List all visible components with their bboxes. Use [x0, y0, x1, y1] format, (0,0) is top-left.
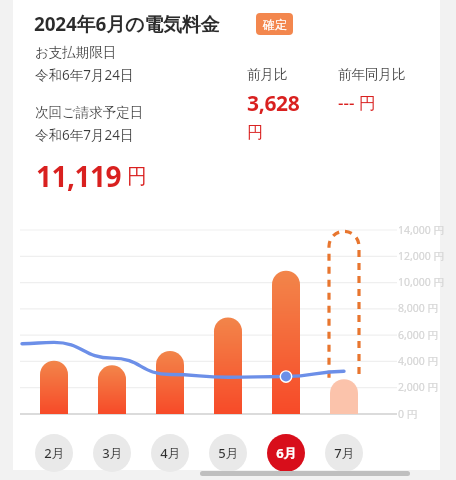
- staticText: 3月: [102, 444, 123, 462]
- staticText: お支払期限日: [35, 44, 117, 61]
- button[interactable]: 4月: [151, 434, 189, 472]
- staticText: 令和6年7月24日: [35, 126, 134, 144]
- staticText: 2024年6月の電気料金: [34, 11, 220, 37]
- button[interactable]: 7月: [325, 434, 363, 472]
- staticText: 前月比: [247, 66, 288, 83]
- staticText: 0 円: [398, 407, 418, 421]
- button[interactable]: 2月: [35, 434, 73, 472]
- staticText: 14,000 円: [398, 223, 445, 237]
- staticText: 前年同月比: [338, 66, 406, 83]
- staticText: 12,000 円: [398, 249, 445, 263]
- staticText: 11,119: [36, 157, 122, 195]
- staticText: 4月: [160, 444, 181, 462]
- staticText: 円: [127, 164, 147, 189]
- staticText: 10,000 円: [398, 275, 445, 289]
- staticText: 確定: [263, 17, 287, 32]
- staticText: 7月: [334, 444, 355, 462]
- button[interactable]: 確定: [256, 13, 293, 35]
- staticText: 6月: [276, 444, 297, 462]
- button[interactable]: 6月: [267, 434, 305, 472]
- staticText: 2,000 円: [398, 380, 439, 394]
- staticText: 2月: [44, 444, 65, 462]
- staticText: 令和6年7月24日: [35, 66, 134, 84]
- button[interactable]: 5月: [209, 434, 247, 472]
- staticText: 3,628: [247, 89, 300, 118]
- button[interactable]: 3月: [93, 434, 131, 472]
- staticText: 6,000 円: [398, 328, 439, 342]
- staticText: 8,000 円: [398, 301, 439, 315]
- staticText: --- 円: [338, 91, 376, 114]
- staticText: 5月: [218, 444, 239, 462]
- staticText: 円: [247, 123, 263, 143]
- staticText: 4,000 円: [398, 354, 439, 368]
- staticText: 次回ご請求予定日: [35, 104, 144, 121]
